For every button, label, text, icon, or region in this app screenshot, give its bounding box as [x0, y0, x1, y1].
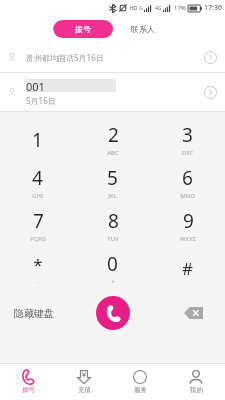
button[interactable]: * — [0, 247, 75, 290]
button[interactable]: 2 — [75, 118, 150, 161]
button[interactable]: Details — [199, 81, 221, 103]
staticText: ABC — [107, 149, 119, 157]
staticText: 4G — [155, 5, 162, 12]
staticText: HD — [130, 5, 138, 12]
button[interactable]: Backspace — [181, 305, 205, 321]
staticText: JKL — [108, 192, 117, 200]
button[interactable]: 5 — [75, 161, 150, 204]
staticText: 8 — [108, 208, 119, 234]
button[interactable]: 充值 — [56, 364, 112, 400]
button[interactable]: 8 — [75, 204, 150, 247]
staticText: 17% — [174, 4, 186, 12]
button[interactable]: 3 — [150, 118, 225, 161]
button[interactable]: Details — [199, 46, 221, 68]
button[interactable]: 隐藏键盘 — [14, 307, 54, 320]
staticText: 拨号 — [22, 386, 35, 394]
staticText: 充值 — [78, 386, 91, 394]
staticText: 3 — [182, 122, 193, 148]
staticText: 联系人 — [131, 24, 155, 34]
staticText: G — [139, 5, 143, 12]
button[interactable]: 联系人 — [113, 20, 173, 38]
staticText: 服务 — [134, 386, 147, 394]
staticText: 拨号 — [75, 24, 91, 34]
button[interactable]: 6 — [150, 161, 225, 204]
staticText: 5月16日 — [26, 95, 56, 106]
staticText: PQRS — [30, 235, 46, 243]
staticText: 隐藏键盘 — [14, 307, 54, 320]
button[interactable]: 拨号 — [53, 20, 113, 38]
staticText: 7 — [33, 208, 44, 234]
staticText: 9 — [183, 208, 194, 234]
staticText: . — [37, 277, 39, 285]
button[interactable]: 1 — [0, 118, 75, 161]
button[interactable]: 我的 — [168, 364, 224, 400]
button[interactable]: 9 — [150, 204, 225, 247]
button[interactable]: 4 — [0, 161, 75, 204]
staticText: 1 — [32, 127, 43, 153]
button[interactable]: 服务 — [112, 364, 168, 400]
staticText: DEF — [182, 149, 193, 157]
staticText: 4 — [32, 165, 43, 191]
staticText: 0 — [107, 251, 118, 277]
staticText: 001 — [26, 79, 45, 92]
button[interactable]: 拨号 — [0, 364, 56, 400]
staticText: 17:36 — [204, 3, 222, 13]
staticText: GHI — [32, 192, 43, 200]
button[interactable]: # — [150, 247, 225, 290]
button[interactable]: 7 — [0, 204, 75, 247]
staticText: MNO — [180, 192, 195, 200]
staticText: 我的 — [190, 386, 203, 394]
button[interactable]: 贵州都均固话5月16日 — [0, 42, 225, 72]
staticText: 6 — [182, 165, 193, 191]
staticText: * — [33, 253, 43, 276]
button[interactable]: Call — [96, 296, 130, 330]
button[interactable]: 001 — [0, 73, 225, 111]
staticText: 2 — [108, 122, 119, 148]
staticText: 5 — [107, 165, 118, 191]
staticText: + — [111, 278, 115, 286]
button[interactable]: 0 — [75, 247, 150, 290]
staticText: TUV — [107, 235, 119, 243]
staticText: # — [182, 257, 193, 280]
staticText: 贵州都均固话5月16日 — [26, 52, 104, 63]
staticText: WXYZ — [180, 235, 196, 243]
